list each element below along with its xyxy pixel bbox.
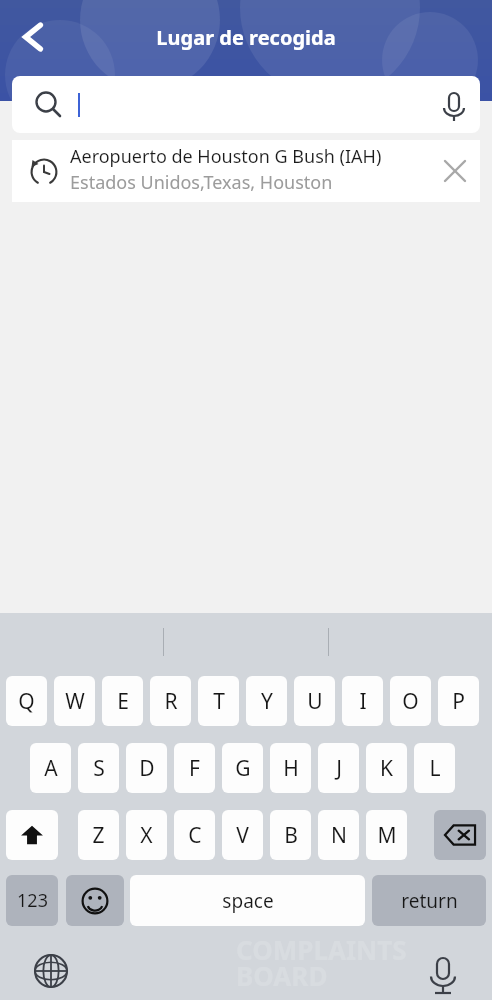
staticText: G bbox=[235, 754, 251, 783]
staticText: F bbox=[189, 754, 200, 783]
button[interactable]: Change language bbox=[29, 949, 73, 993]
staticText: I bbox=[359, 687, 367, 716]
staticText: 123 bbox=[17, 888, 48, 913]
button[interactable]: F bbox=[174, 743, 215, 793]
button[interactable]: Back bbox=[10, 14, 56, 60]
staticText: H bbox=[283, 754, 299, 783]
staticText: return bbox=[401, 888, 458, 914]
button[interactable]: Emoji bbox=[66, 875, 124, 926]
button[interactable]: 123 bbox=[6, 875, 58, 926]
staticText: E bbox=[117, 687, 129, 716]
staticText: C bbox=[188, 821, 202, 850]
staticText: T bbox=[213, 687, 225, 716]
button[interactable]: I bbox=[342, 676, 383, 726]
staticText: X bbox=[140, 821, 153, 850]
button[interactable]: C bbox=[174, 810, 215, 860]
button[interactable]: X bbox=[126, 810, 167, 860]
button[interactable]: K bbox=[366, 743, 407, 793]
button[interactable]: return bbox=[372, 875, 486, 926]
button[interactable]: R bbox=[150, 676, 191, 726]
button[interactable]: H bbox=[270, 743, 311, 793]
button[interactable]: T bbox=[198, 676, 239, 726]
button[interactable]: Voice search bbox=[432, 82, 476, 126]
staticText: space bbox=[222, 888, 274, 914]
button[interactable]: Z bbox=[78, 810, 119, 860]
button[interactable]: B bbox=[270, 810, 311, 860]
button[interactable]: M bbox=[366, 810, 407, 860]
button[interactable]: Backspace bbox=[434, 810, 486, 860]
staticText: R bbox=[164, 687, 178, 716]
staticText: S bbox=[93, 754, 105, 783]
button[interactable]: Shift bbox=[6, 810, 58, 860]
staticText: Estados Unidos,Texas, Houston bbox=[70, 170, 333, 195]
button[interactable]: Dictation bbox=[421, 949, 465, 997]
staticText: K bbox=[380, 754, 393, 783]
staticText: Q bbox=[18, 687, 35, 716]
staticText: U bbox=[307, 687, 323, 716]
staticText: Lugar de recogida bbox=[126, 24, 366, 56]
staticText: P bbox=[452, 687, 465, 716]
button[interactable]: Y bbox=[246, 676, 287, 726]
staticText: D bbox=[139, 754, 155, 783]
button[interactable] bbox=[12, 76, 480, 133]
button[interactable]: W bbox=[54, 676, 95, 726]
button[interactable]: U bbox=[294, 676, 335, 726]
staticText: V bbox=[236, 821, 249, 850]
staticText: Y bbox=[261, 687, 273, 716]
staticText: W bbox=[65, 687, 85, 716]
staticText: L bbox=[429, 754, 441, 783]
button[interactable]: O bbox=[390, 676, 431, 726]
button[interactable]: S bbox=[78, 743, 119, 793]
staticText: A bbox=[44, 754, 58, 783]
button[interactable]: P bbox=[438, 676, 479, 726]
button[interactable]: A bbox=[30, 743, 71, 793]
button[interactable]: Q bbox=[6, 676, 47, 726]
button[interactable]: J bbox=[318, 743, 359, 793]
button[interactable]: Remove bbox=[432, 148, 478, 194]
staticText: O bbox=[402, 687, 419, 716]
staticText: J bbox=[336, 754, 342, 783]
staticText: B bbox=[284, 821, 298, 850]
button[interactable]: space bbox=[130, 875, 365, 926]
button[interactable]: G bbox=[222, 743, 263, 793]
button[interactable]: L bbox=[414, 743, 455, 793]
staticText: M bbox=[377, 821, 397, 850]
button[interactable]: N bbox=[318, 810, 359, 860]
staticText: Z bbox=[92, 821, 105, 850]
staticText: N bbox=[331, 821, 347, 850]
button[interactable]: Aeropuerto de Houston G Bush (IAH) bbox=[12, 140, 480, 202]
button[interactable]: D bbox=[126, 743, 167, 793]
button[interactable]: E bbox=[102, 676, 143, 726]
button[interactable]: V bbox=[222, 810, 263, 860]
staticText: Aeropuerto de Houston G Bush (IAH) bbox=[70, 144, 382, 169]
